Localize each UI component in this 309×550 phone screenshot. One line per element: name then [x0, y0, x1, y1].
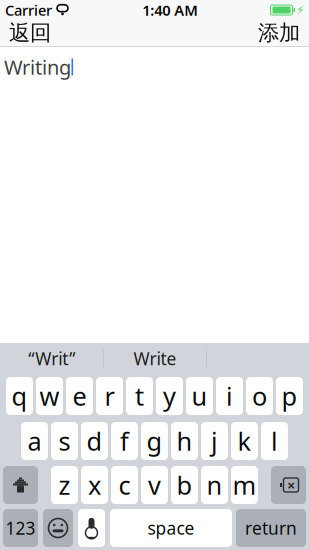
- button[interactable]: Write: [104, 344, 206, 373]
- staticText: m: [232, 468, 256, 502]
- button[interactable]: x: [81, 466, 108, 504]
- button[interactable]: “Writ”: [0, 344, 103, 373]
- staticText: 123: [5, 516, 35, 539]
- button[interactable]: n: [201, 466, 228, 504]
- button[interactable]: o: [246, 377, 273, 415]
- staticText: q: [11, 379, 27, 413]
- staticText: 返回: [9, 20, 51, 46]
- button[interactable]: a: [21, 422, 48, 460]
- button[interactable]: d: [81, 422, 108, 460]
- staticText: c: [118, 468, 130, 502]
- staticText: s: [58, 424, 70, 458]
- staticText: Carrier: [5, 0, 52, 20]
- button[interactable]: q: [6, 377, 33, 415]
- staticText: e: [72, 379, 86, 413]
- button[interactable]: Shift: [3, 466, 38, 504]
- button[interactable]: space: [110, 509, 232, 547]
- staticText: y: [163, 379, 176, 413]
- staticText: u: [191, 379, 207, 413]
- button[interactable]: j: [201, 422, 228, 460]
- button[interactable]: z: [51, 466, 78, 504]
- staticText: “Writ”: [28, 347, 75, 370]
- staticText: f: [120, 424, 129, 458]
- button[interactable]: Dictation: [78, 509, 105, 547]
- staticText: k: [237, 424, 251, 458]
- button[interactable]: b: [171, 466, 198, 504]
- button[interactable]: c: [111, 466, 138, 504]
- staticText: return: [245, 516, 297, 539]
- staticText: o: [252, 379, 267, 413]
- button[interactable]: p: [276, 377, 303, 415]
- button[interactable]: 添加: [249, 19, 309, 46]
- button[interactable]: Numbers: [3, 509, 38, 547]
- staticText: x: [88, 468, 101, 502]
- staticText: z: [58, 468, 70, 502]
- staticText: j: [211, 424, 218, 458]
- staticText: v: [148, 468, 161, 502]
- button[interactable]: g: [141, 422, 168, 460]
- staticText: l: [271, 424, 278, 458]
- staticText: p: [281, 379, 297, 413]
- staticText: b: [176, 468, 192, 502]
- button[interactable]: t: [126, 377, 153, 415]
- button[interactable]: h: [171, 422, 198, 460]
- staticText: ×: [287, 475, 295, 495]
- staticText: w: [39, 379, 59, 413]
- button[interactable]: u: [186, 377, 213, 415]
- button[interactable]: s: [51, 422, 78, 460]
- staticText: 1:40 AM: [142, 0, 198, 20]
- button[interactable]: w: [36, 377, 63, 415]
- button[interactable]: k: [231, 422, 258, 460]
- staticText: r: [104, 379, 114, 413]
- staticText: Write: [133, 347, 176, 370]
- button[interactable]: 返回: [0, 19, 60, 46]
- button[interactable]: e: [66, 377, 93, 415]
- staticText: t: [135, 379, 144, 413]
- staticText: d: [86, 424, 102, 458]
- button[interactable]: i: [216, 377, 243, 415]
- staticText: h: [176, 424, 192, 458]
- staticText: g: [146, 424, 162, 458]
- staticText: n: [206, 468, 222, 502]
- button[interactable]: y: [156, 377, 183, 415]
- button[interactable]: return: [236, 509, 306, 547]
- staticText: space: [147, 516, 194, 539]
- staticText: ⚡︎: [296, 3, 304, 17]
- button[interactable]: Delete: [271, 466, 306, 504]
- button[interactable]: f: [111, 422, 138, 460]
- staticText: a: [27, 424, 41, 458]
- staticText: Writing: [4, 54, 71, 80]
- button[interactable]: m: [231, 466, 258, 504]
- button[interactable]: r: [96, 377, 123, 415]
- staticText: 添加: [258, 20, 300, 46]
- staticText: i: [226, 379, 233, 413]
- button[interactable]: Emoji: [43, 509, 73, 547]
- button[interactable]: l: [261, 422, 288, 460]
- button[interactable]: v: [141, 466, 168, 504]
